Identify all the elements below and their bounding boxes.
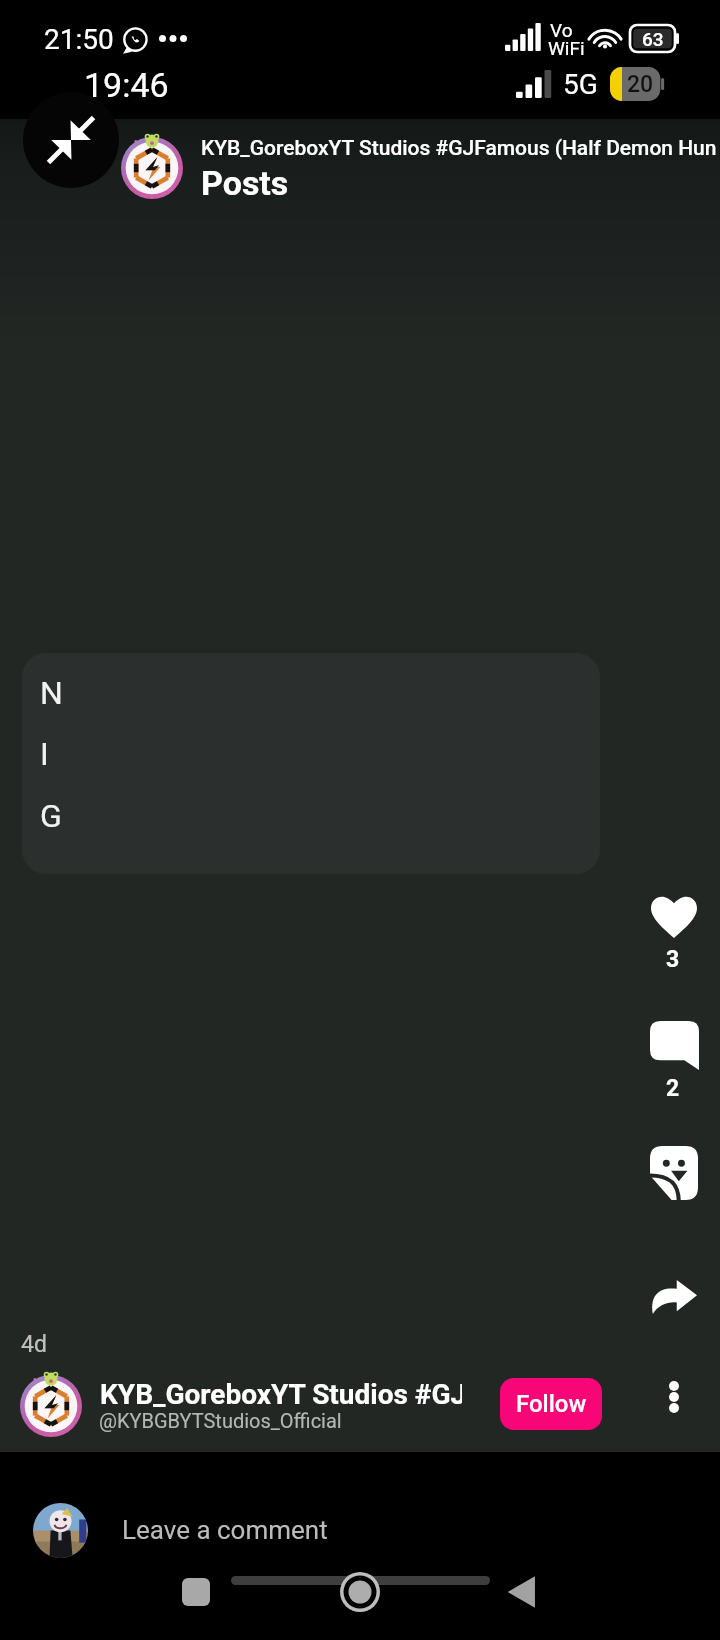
button[interactable]: Home	[340, 1572, 380, 1612]
staticText: 19:46	[84, 65, 169, 105]
button[interactable]: Recents	[182, 1578, 210, 1606]
button[interactable]: Channel avatar	[121, 137, 183, 199]
button[interactable]: Like	[628, 882, 720, 986]
button[interactable]: KYB_GoreboxYT Studios #GJF	[14, 1366, 484, 1446]
button[interactable]: N	[22, 653, 600, 874]
button[interactable]: Comments	[628, 1008, 720, 1112]
staticText: G	[40, 797, 62, 835]
staticText: 20	[627, 71, 654, 98]
staticText: Follow	[516, 1390, 587, 1418]
button[interactable]: Share	[628, 1264, 720, 1336]
staticText: KYB_GoreboxYT Studios #GJF	[100, 1378, 462, 1411]
staticText: @KYBGBYTStudios_Official	[99, 1409, 342, 1432]
staticText: 5G	[563, 68, 598, 101]
button[interactable]: Add sticker	[628, 1132, 720, 1212]
button[interactable]: More options	[646, 1365, 702, 1429]
button[interactable]: Leave a comment	[0, 1452, 720, 1572]
staticText: 4d	[21, 1331, 47, 1358]
button[interactable]: Follow	[500, 1378, 602, 1430]
button[interactable]: Collapse	[23, 92, 119, 188]
staticText: Vo	[550, 19, 573, 41]
staticText: WiFi	[548, 37, 585, 59]
staticText: KYB_GoreboxYT Studios #GJFamous (Half De…	[201, 136, 720, 161]
button[interactable]: Back	[504, 1574, 540, 1610]
staticText: I	[40, 735, 49, 773]
staticText: N	[40, 674, 63, 712]
staticText: 21:50	[44, 23, 114, 56]
staticText: 3	[666, 946, 680, 973]
staticText: Posts	[201, 163, 289, 203]
staticText: 2	[666, 1075, 680, 1102]
staticText: Leave a comment	[122, 1515, 328, 1545]
staticText: 63	[642, 28, 664, 50]
